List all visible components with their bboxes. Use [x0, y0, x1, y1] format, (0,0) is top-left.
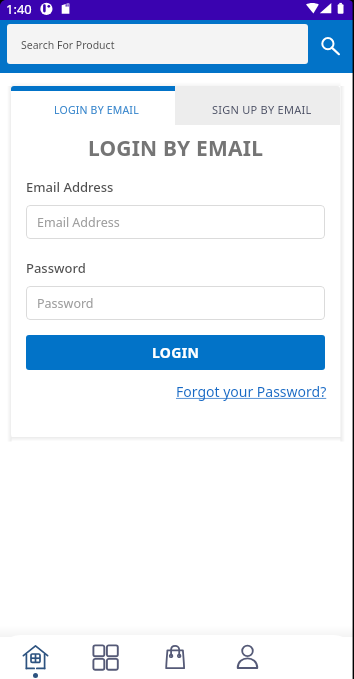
button[interactable]: SIGN UP BY EMAIL	[175, 86, 340, 125]
staticText: Password	[37, 295, 94, 312]
staticText: LOGIN BY EMAIL	[11, 134, 340, 163]
staticText: Search For Product	[21, 38, 115, 52]
staticText: LOGIN BY EMAIL	[54, 103, 139, 117]
button[interactable]: Password	[26, 286, 325, 320]
button[interactable]: Email Address	[26, 205, 325, 239]
button[interactable]: Forgot your Password?	[174, 382, 325, 401]
button[interactable]: LOGIN BY EMAIL	[11, 86, 175, 125]
staticText: SIGN UP BY EMAIL	[212, 102, 312, 117]
staticText: Password	[26, 259, 86, 277]
button[interactable]: Categories	[70, 626, 141, 679]
staticText: Email Address	[37, 214, 120, 231]
staticText: LOGIN	[152, 343, 200, 362]
button[interactable]: LOGIN	[26, 335, 325, 370]
button[interactable]: Search	[308, 20, 354, 73]
staticText: Email Address	[26, 178, 114, 196]
button[interactable]: Home	[0, 626, 70, 679]
staticText: 1:40	[6, 0, 32, 18]
button[interactable]: Account	[212, 626, 283, 679]
button[interactable]: Cart	[141, 626, 212, 679]
button[interactable]: Search For Product	[7, 24, 308, 64]
